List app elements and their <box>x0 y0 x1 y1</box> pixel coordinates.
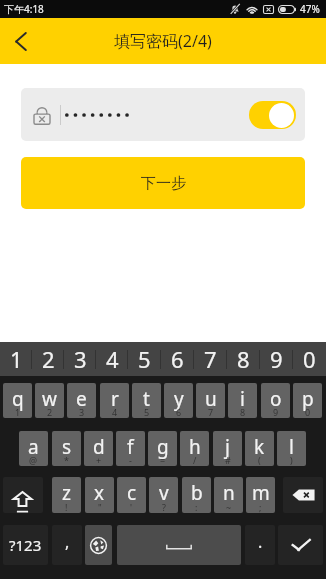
button[interactable]: Space <box>117 525 241 565</box>
button[interactable]: z <box>52 477 81 513</box>
button[interactable]: r <box>100 383 129 418</box>
staticText: w <box>42 386 57 412</box>
staticText: 9 <box>270 344 283 374</box>
button[interactable]: w <box>35 383 64 418</box>
staticText: ?123 <box>9 535 42 555</box>
staticText: , <box>65 531 70 553</box>
staticText: x <box>94 480 105 506</box>
button[interactable]: Change keyboard language <box>85 525 112 565</box>
staticText: 6 <box>171 344 184 374</box>
staticText: j <box>225 434 230 460</box>
staticText: 1 <box>15 406 21 418</box>
staticText: 4 <box>106 344 119 374</box>
button[interactable]: b <box>182 477 211 513</box>
button[interactable]: 4 <box>96 342 128 376</box>
button[interactable]: g <box>148 431 177 466</box>
button[interactable]: . <box>245 525 275 565</box>
staticText: v <box>159 480 169 506</box>
button[interactable]: l <box>277 431 306 466</box>
button[interactable]: d <box>84 431 113 466</box>
button[interactable]: Enter <box>278 525 323 565</box>
staticText: e <box>76 386 87 412</box>
button[interactable]: Toggle password visibility <box>21 88 305 141</box>
staticText: u <box>205 386 217 412</box>
staticText: r <box>111 386 119 412</box>
button[interactable]: 8 <box>227 342 260 376</box>
staticText: i <box>240 386 245 412</box>
staticText: a <box>28 434 39 460</box>
staticText: 47% <box>300 2 320 16</box>
staticText: k <box>254 434 265 460</box>
button[interactable]: 0 <box>293 342 326 376</box>
button[interactable]: Toggle password visibility <box>249 101 296 129</box>
staticText: 8 <box>240 406 246 418</box>
staticText: + <box>96 454 102 466</box>
staticText: 8 <box>237 344 250 374</box>
staticText: z <box>62 480 71 506</box>
button[interactable]: 6 <box>161 342 194 376</box>
button[interactable]: y <box>164 383 193 418</box>
button[interactable]: f <box>116 431 145 466</box>
button[interactable]: t <box>132 383 161 418</box>
button[interactable]: q <box>3 383 32 418</box>
staticText: 6 <box>176 406 182 418</box>
button[interactable]: 7 <box>194 342 227 376</box>
button[interactable]: 5 <box>128 342 161 376</box>
staticText: q <box>12 386 24 412</box>
staticText: 2 <box>42 344 55 374</box>
button[interactable]: e <box>67 383 96 418</box>
button[interactable]: c <box>117 477 146 513</box>
staticText: b <box>191 480 203 506</box>
button[interactable]: , <box>52 525 82 565</box>
button[interactable]: ?123 <box>3 525 48 565</box>
button[interactable]: k <box>245 431 274 466</box>
staticText: 0 <box>305 406 311 418</box>
staticText: @ <box>29 454 38 466</box>
staticText: 填写密码(2/4) <box>114 30 212 52</box>
button[interactable]: s <box>52 431 81 466</box>
button[interactable]: 3 <box>64 342 96 376</box>
staticText: 7 <box>208 406 214 418</box>
staticText: m <box>252 480 270 506</box>
button[interactable]: Backspace <box>283 477 323 513</box>
staticText: f <box>127 434 134 460</box>
button[interactable]: 下一步 <box>21 157 305 209</box>
staticText: s <box>62 434 72 460</box>
staticText: - <box>129 454 132 466</box>
staticText: * <box>64 454 69 466</box>
button[interactable]: a <box>19 431 48 466</box>
staticText: ; <box>259 501 262 513</box>
staticText: 4 <box>112 406 118 418</box>
button[interactable]: Back <box>0 18 41 64</box>
staticText: : <box>195 501 198 513</box>
staticText: g <box>157 434 169 460</box>
staticText: ) <box>290 454 293 466</box>
staticText: t <box>143 386 150 412</box>
staticText: / <box>193 454 197 466</box>
button[interactable]: Shift <box>3 477 43 513</box>
button[interactable]: 2 <box>32 342 64 376</box>
staticText: 3 <box>79 406 85 418</box>
staticText: 下午4:18 <box>4 2 44 16</box>
button[interactable]: 9 <box>260 342 293 376</box>
staticText: 9 <box>273 406 279 418</box>
staticText: 7 <box>204 344 217 374</box>
staticText: # <box>225 454 231 466</box>
button[interactable]: m <box>246 477 275 513</box>
button[interactable]: p <box>293 383 322 418</box>
button[interactable]: x <box>85 477 114 513</box>
button[interactable]: i <box>228 383 257 418</box>
button[interactable]: v <box>149 477 178 513</box>
staticText: n <box>223 480 235 506</box>
button[interactable]: n <box>214 477 243 513</box>
staticText: d <box>93 434 105 460</box>
button[interactable]: u <box>196 383 225 418</box>
button[interactable]: 1 <box>0 342 32 376</box>
staticText: ~ <box>226 501 232 513</box>
button[interactable]: j <box>213 431 242 466</box>
staticText: ( <box>258 454 261 466</box>
button[interactable]: h <box>180 431 209 466</box>
staticText: c <box>127 480 137 506</box>
staticText: l <box>289 434 294 460</box>
button[interactable]: o <box>261 383 290 418</box>
